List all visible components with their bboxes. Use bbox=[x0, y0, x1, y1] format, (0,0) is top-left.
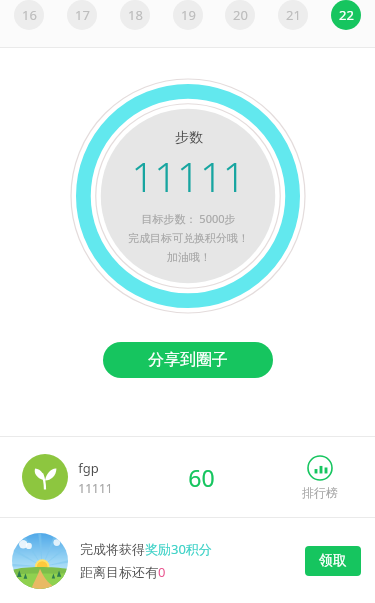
staticText: 完成将获得奖励30积分 bbox=[80, 540, 212, 558]
staticText: 加油哦！ bbox=[167, 250, 211, 264]
staticText: 排行榜 bbox=[302, 485, 338, 500]
staticText: 16 bbox=[22, 6, 37, 24]
button[interactable]: 17 bbox=[67, 0, 97, 30]
button[interactable]: 22 bbox=[331, 0, 361, 30]
button[interactable]: 分享到圈子 bbox=[103, 342, 273, 378]
button[interactable]: 排行榜 bbox=[264, 437, 375, 517]
staticText: fgp bbox=[78, 459, 99, 477]
staticText: 60 bbox=[188, 462, 215, 493]
staticText: 距离目标还有0 bbox=[80, 563, 166, 581]
button[interactable]: fgp bbox=[0, 437, 139, 517]
button[interactable]: 21 bbox=[278, 0, 308, 30]
staticText: 步数 bbox=[175, 129, 203, 147]
staticText: 18 bbox=[128, 6, 143, 24]
button[interactable]: 16 bbox=[14, 0, 44, 30]
button[interactable]: 20 bbox=[225, 0, 255, 30]
staticText: 目标步数： 5000步 bbox=[141, 211, 236, 226]
staticText: 17 bbox=[75, 6, 90, 24]
staticText: 完成目标可兑换积分哦！ bbox=[128, 231, 249, 245]
staticText: 领取 bbox=[319, 552, 347, 570]
staticText: 19 bbox=[181, 6, 196, 24]
staticText: 20 bbox=[233, 6, 248, 24]
staticText: 11111 bbox=[78, 480, 113, 496]
button[interactable]: 19 bbox=[173, 0, 203, 30]
button[interactable]: 领取 bbox=[305, 546, 361, 576]
staticText: 22 bbox=[339, 6, 354, 24]
button[interactable]: 18 bbox=[120, 0, 150, 30]
staticText: 11111 bbox=[131, 149, 246, 203]
staticText: 分享到圈子 bbox=[148, 350, 228, 370]
staticText: 21 bbox=[286, 6, 301, 24]
